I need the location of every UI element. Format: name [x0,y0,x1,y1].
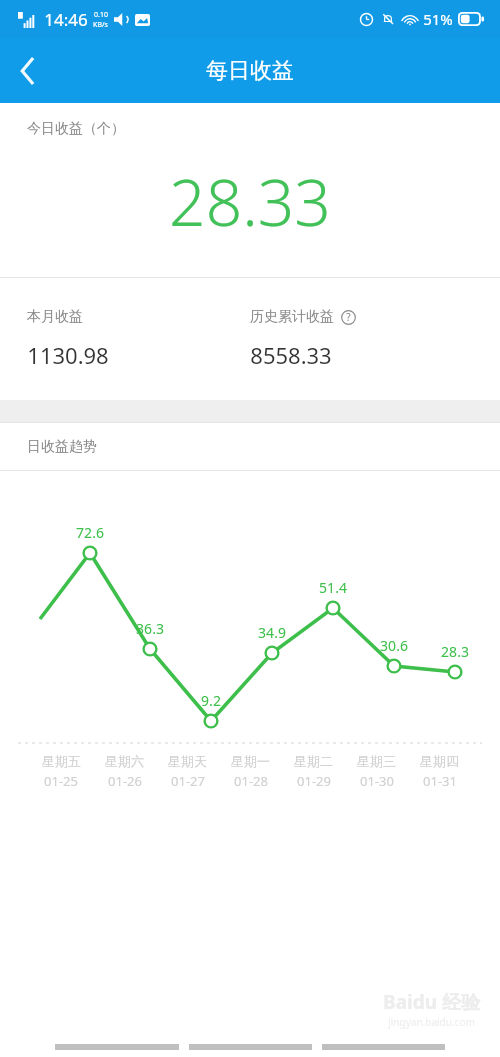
staticText: 每日收益 [206,57,294,85]
staticText: 今日收益（个） [27,120,125,138]
staticText: 30.6 [380,636,408,655]
staticText: 51% [423,9,453,29]
staticText: Baidu 经验 [383,989,480,1015]
staticText: 01-26 [108,772,142,790]
staticText: 星期四 [420,753,459,769]
staticText: 51.4 [319,578,347,597]
staticText: 历史累计收益 [250,308,334,326]
staticText: 日收益趋势 [27,438,97,456]
staticText: 01-28 [234,772,268,790]
staticText: 本月收益 [27,308,83,326]
staticText: 14:46 [44,8,88,31]
staticText: ? [346,310,351,324]
staticText: 01-30 [360,772,394,790]
button[interactable]: Help [340,309,356,325]
staticText: 星期二 [294,753,333,769]
button[interactable]: Back [0,43,56,99]
staticText: 9.2 [201,691,221,710]
staticText: 1130.98 [27,340,109,370]
staticText: 34.9 [258,623,286,642]
staticText: 01-29 [297,772,331,790]
staticText: 8558.33 [250,340,332,370]
staticText: 01-27 [171,772,205,790]
staticText: 星期一 [231,753,270,769]
staticText: 36.3 [136,619,164,638]
staticText: 星期三 [357,753,396,769]
staticText: 28.33 [169,158,331,245]
staticText: jingyan.baidu.com [388,1015,475,1029]
staticText: 星期五 [42,753,81,769]
staticText: 28.3 [441,642,469,661]
staticText: 星期六 [105,753,144,769]
staticText: 01-31 [423,772,457,790]
staticText: 01-25 [44,772,78,790]
staticText: KB/s [93,20,108,30]
staticText: 星期天 [168,753,207,769]
staticText: 72.6 [76,523,104,542]
staticText: 0.10 [94,10,108,20]
